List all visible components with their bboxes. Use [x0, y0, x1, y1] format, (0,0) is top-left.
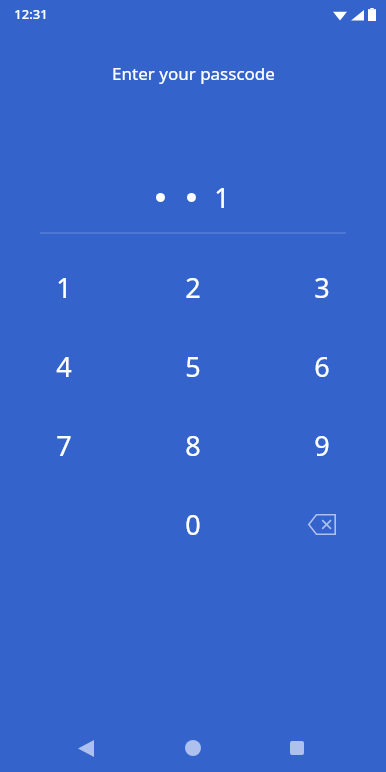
button[interactable]: 0: [128, 497, 257, 551]
button[interactable]: 2: [128, 260, 257, 314]
button[interactable]: 7: [0, 418, 128, 472]
staticText: 8: [185, 427, 201, 464]
staticText: 7: [56, 427, 72, 464]
staticText: 0: [185, 506, 201, 543]
staticText: 2: [185, 269, 201, 306]
staticText: 3: [314, 269, 330, 306]
button[interactable]: 9: [257, 418, 386, 472]
staticText: 9: [314, 427, 330, 464]
button[interactable]: 3: [257, 260, 386, 314]
button[interactable]: 4: [0, 339, 128, 393]
button[interactable]: Recent apps: [275, 726, 319, 770]
button[interactable]: Back: [64, 726, 108, 770]
button[interactable]: Home: [171, 726, 215, 770]
button[interactable]: Backspace: [257, 497, 386, 551]
button[interactable]: 5: [128, 339, 257, 393]
button[interactable]: 8: [128, 418, 257, 472]
button[interactable]: 1: [0, 260, 128, 314]
staticText: 5: [185, 348, 201, 385]
staticText: 12:31: [14, 5, 48, 23]
staticText: 4: [56, 348, 72, 385]
staticText: 1: [56, 269, 72, 306]
staticText: 6: [314, 348, 330, 385]
button[interactable]: 6: [257, 339, 386, 393]
staticText: Enter your passcode: [112, 62, 275, 85]
staticText: 1: [214, 179, 230, 216]
